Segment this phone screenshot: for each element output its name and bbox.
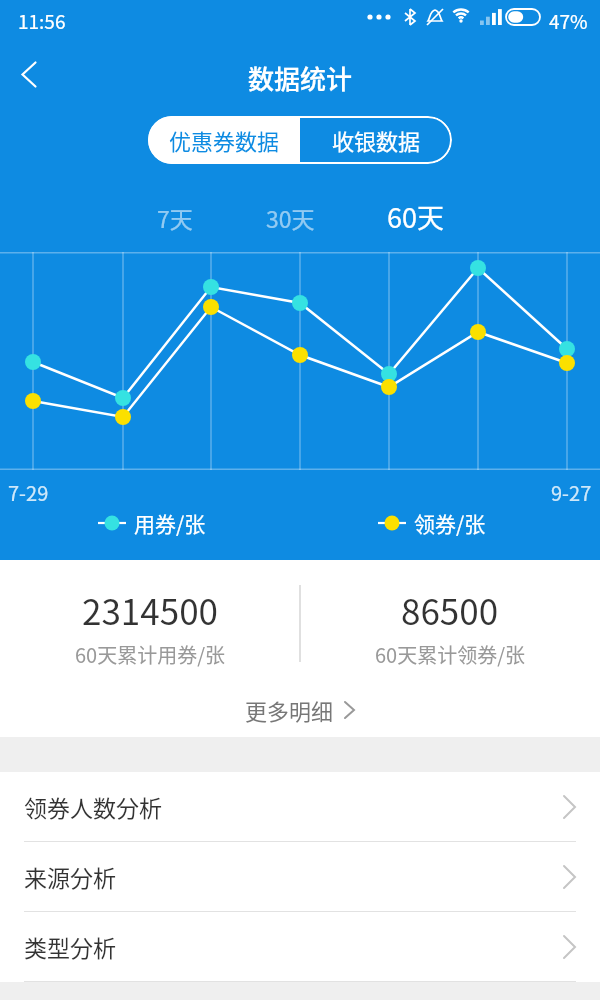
- staticText: 类型分析: [24, 930, 116, 963]
- staticText: 更多明细: [245, 694, 334, 726]
- staticText: 60天累计领券/张: [375, 640, 526, 669]
- staticText: 2314500: [82, 584, 218, 635]
- button[interactable]: 60天: [375, 196, 455, 236]
- staticText: 优惠券数据: [169, 124, 280, 156]
- button[interactable]: 来源分析: [0, 842, 600, 911]
- staticText: 30天: [266, 201, 315, 234]
- staticText: 47%: [549, 7, 588, 35]
- staticText: 60天累计用券/张: [75, 640, 226, 669]
- button[interactable]: 领券人数分析: [0, 772, 600, 841]
- staticText: 领券/张: [414, 508, 486, 538]
- staticText: 86500: [401, 584, 499, 635]
- staticText: 用券/张: [134, 508, 206, 538]
- staticText: 领券人数分析: [24, 790, 162, 823]
- button[interactable]: 收银数据: [300, 116, 452, 164]
- staticText: 9-27: [551, 478, 592, 507]
- staticText: 收银数据: [332, 124, 421, 156]
- staticText: 60天: [387, 197, 444, 236]
- staticText: 11:56: [18, 7, 66, 35]
- staticText: 7-29: [8, 478, 49, 507]
- staticText: 来源分析: [24, 860, 116, 893]
- button[interactable]: 更多明细: [245, 694, 355, 726]
- staticText: 7天: [157, 201, 193, 234]
- button[interactable]: 优惠券数据: [148, 116, 300, 164]
- button[interactable]: 30天: [250, 198, 330, 236]
- staticText: 数据统计: [0, 59, 600, 97]
- button[interactable]: 7天: [135, 198, 215, 236]
- button[interactable]: 类型分析: [0, 912, 600, 981]
- button[interactable]: [21, 61, 37, 88]
